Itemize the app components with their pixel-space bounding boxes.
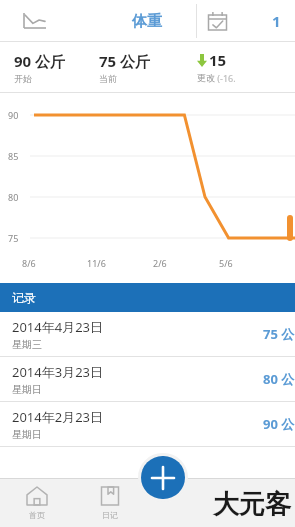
staticText: (-16.	[215, 72, 236, 84]
button[interactable]: Calendar	[197, 0, 295, 42]
staticText: 星期三	[12, 338, 42, 351]
staticText: 当前	[99, 73, 117, 84]
staticText: 2014年4月23日	[12, 318, 104, 336]
button[interactable]: Add	[141, 456, 185, 499]
staticText: 85	[8, 150, 19, 162]
staticText: 大元客	[213, 488, 291, 521]
staticText: 5/6	[219, 257, 233, 269]
staticText: 星期日	[12, 428, 42, 441]
staticText: 75	[8, 232, 19, 244]
staticText: 90	[8, 109, 19, 121]
staticText: 记录	[12, 290, 36, 305]
other: Calendar	[207, 11, 228, 32]
staticText: 2014年3月23日	[12, 363, 104, 381]
button[interactable]: 75 公斤	[99, 42, 197, 92]
staticText: 15	[209, 50, 227, 70]
staticText: 日记	[102, 510, 118, 520]
staticText: 90 公斤	[14, 51, 66, 71]
button[interactable]: 体重	[98, 0, 196, 42]
button[interactable]: 15	[197, 42, 295, 92]
staticText: 75 公斤	[99, 51, 151, 71]
staticText: 90 公	[263, 415, 295, 433]
staticText: 8/6	[22, 257, 36, 269]
staticText: 2014年2月23日	[12, 408, 104, 426]
staticText: 星期日	[12, 383, 42, 396]
staticText: 11/6	[87, 257, 106, 269]
button[interactable]: 90 公斤	[0, 42, 99, 92]
staticText: 80	[8, 191, 19, 203]
button[interactable]: 2014年2月23日	[0, 402, 295, 446]
staticText: 首页	[29, 510, 45, 520]
button[interactable]: 首页	[0, 478, 73, 527]
staticText: 2/6	[153, 257, 167, 269]
staticText: 75 公	[263, 325, 295, 343]
button[interactable]: 2014年4月23日	[0, 312, 295, 356]
staticText: 开始	[14, 73, 32, 84]
button[interactable]: 2014年3月23日	[0, 357, 295, 401]
staticText: 体重	[132, 12, 162, 31]
staticText: 1	[272, 11, 281, 31]
button[interactable]: 记录	[0, 283, 295, 312]
button[interactable]: Chart	[0, 0, 98, 42]
button[interactable]: 日记	[73, 478, 147, 527]
staticText: 80 公	[263, 370, 295, 388]
staticText: 更改	[197, 72, 215, 83]
